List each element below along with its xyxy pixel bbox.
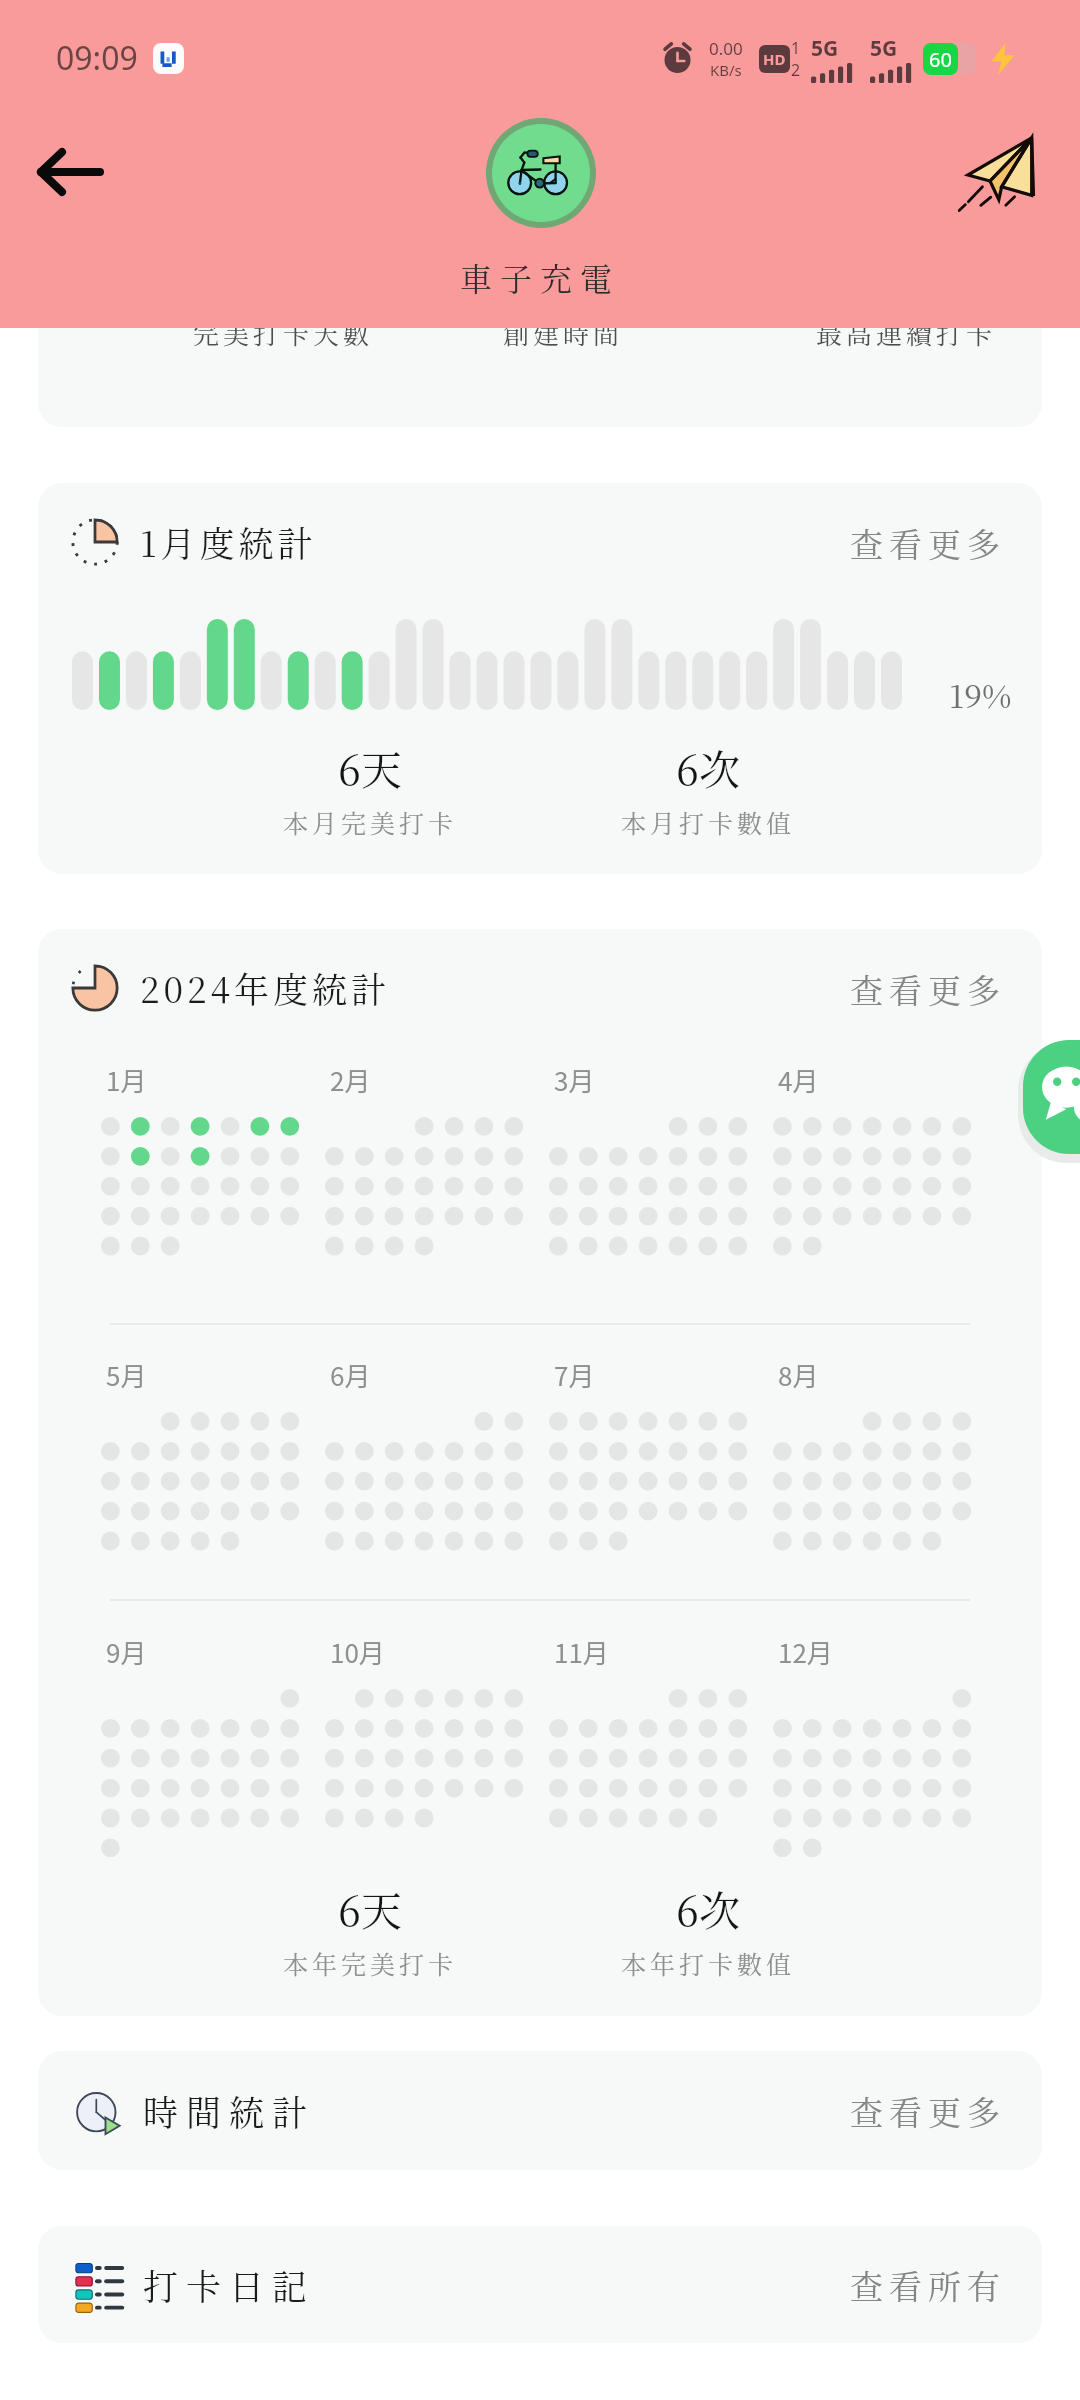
button[interactable]: 時間統計 [38,2051,1042,2170]
staticText: 創建時間 [503,328,624,351]
staticText: 查看更多 [847,519,1003,566]
button[interactable] [486,118,596,228]
button[interactable]: WeChat [1023,1040,1080,1154]
button[interactable]: 查看更多 [847,965,1003,1012]
staticText: 本年完美打卡 [283,1945,458,1981]
staticText: 查看更多 [847,2087,1003,2134]
staticText: 1 [791,37,801,59]
staticText: KB/s [710,60,742,80]
staticText: 本月打卡數值 [621,804,796,840]
button[interactable]: Share [955,135,1055,235]
staticText: 6次 [676,738,740,797]
staticText: 最高連續打卡 [816,328,997,351]
staticText: 本月完美打卡 [283,804,458,840]
staticText: 2 [791,59,801,81]
staticText: 3月 [554,1061,595,1099]
button[interactable]: 1月度統計 [38,483,1042,874]
staticText: 6次 [676,1879,740,1938]
staticText: 6月 [330,1356,371,1394]
staticText: 19% [949,671,1012,717]
staticText: 時間統計 [143,2086,316,2136]
button[interactable]: 完美打卡天數 [38,328,1042,427]
staticText: HD [763,49,786,69]
staticText: 5月 [106,1356,147,1394]
staticText: 4月 [778,1061,819,1099]
staticText: 7月 [554,1356,595,1394]
staticText: 6天 [338,1879,402,1938]
staticText: 完美打卡天數 [193,328,374,351]
staticText: 60 [929,46,952,73]
staticText: 8月 [778,1356,819,1394]
staticText: 09:09 [56,36,138,80]
button[interactable]: 2024年度統計 [38,929,1042,2016]
staticText: 車子充電 [460,254,621,300]
staticText: 0.00 [709,37,743,60]
button[interactable]: 查看更多 [847,519,1003,566]
staticText: 本年打卡數值 [621,1945,796,1981]
staticText: 11月 [554,1633,609,1671]
button[interactable]: Back [26,132,114,212]
staticText: 10月 [330,1633,385,1671]
staticText: 查看更多 [847,965,1003,1012]
button[interactable]: 打卡日記 [38,2226,1042,2343]
staticText: 9月 [106,1633,147,1671]
staticText: 2024年度統計 [140,963,390,1013]
staticText: 6天 [338,738,402,797]
staticText: 查看所有 [847,2261,1003,2308]
staticText: 打卡日記 [143,2260,316,2310]
staticText: 12月 [778,1633,833,1671]
staticText: 1月 [106,1061,147,1099]
staticText: 5G [811,34,839,63]
staticText: 2月 [330,1061,371,1099]
staticText: 1月度統計 [140,517,317,567]
staticText: 5G [870,34,898,63]
